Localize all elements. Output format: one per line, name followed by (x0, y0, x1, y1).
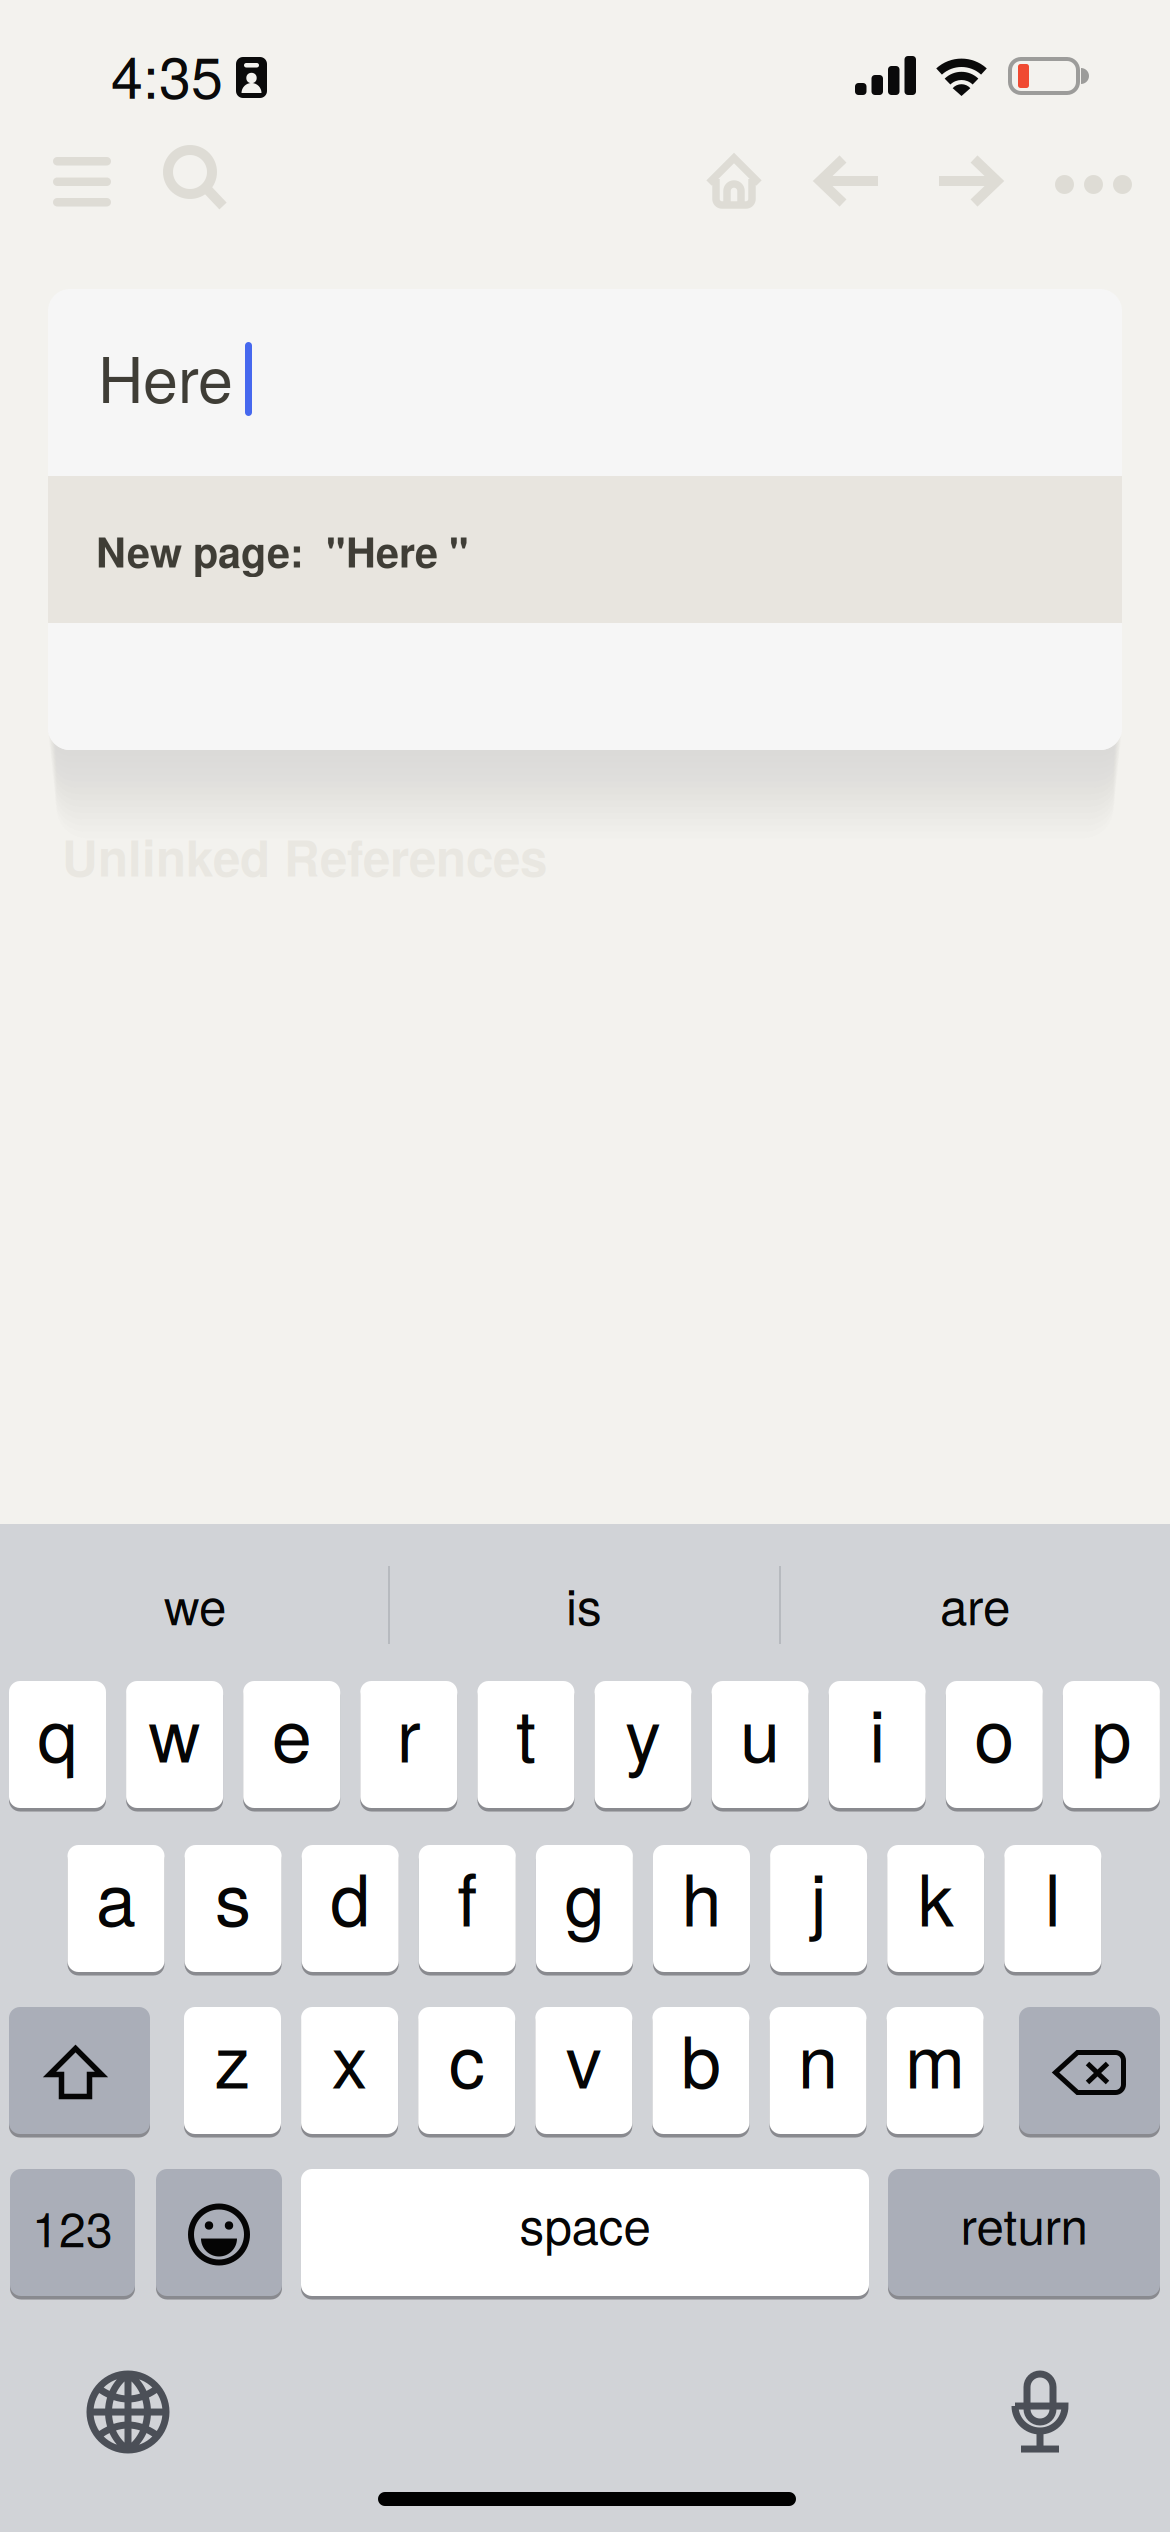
button[interactable]: q (9, 1681, 106, 1812)
button[interactable]: g (536, 1845, 633, 1976)
button[interactable]: o (946, 1681, 1043, 1812)
button[interactable]: space (301, 2169, 869, 2300)
staticText: e (272, 1680, 312, 1783)
staticText: we (164, 1569, 226, 1639)
button[interactable]: h (653, 1845, 750, 1976)
button[interactable]: u (712, 1681, 809, 1812)
button[interactable]: e (243, 1681, 340, 1812)
staticText: Here (98, 331, 233, 421)
staticText: s (215, 1844, 251, 1947)
button[interactable]: t (477, 1681, 574, 1812)
button[interactable]: d (302, 1845, 399, 1976)
staticText: return (960, 2188, 1087, 2259)
staticText: t (516, 1680, 536, 1783)
staticText: h (681, 1844, 721, 1947)
button[interactable]: Search (143, 125, 253, 235)
button[interactable]: New page: "Here " (48, 476, 1122, 623)
staticText: u (740, 1680, 780, 1783)
button[interactable]: p (1063, 1681, 1160, 1812)
button[interactable]: Dictate (985, 2344, 1095, 2480)
staticText: space (519, 2188, 650, 2259)
staticText: x (332, 2006, 368, 2109)
button[interactable]: l (1004, 1845, 1101, 1976)
staticText: d (330, 1844, 370, 1947)
button[interactable]: are (781, 1554, 1169, 1654)
staticText: i (869, 1680, 885, 1783)
button[interactable]: Menu (27, 131, 137, 233)
staticText: y (625, 1680, 661, 1783)
button[interactable]: z (184, 2007, 281, 2138)
button[interactable]: Delete (1019, 2007, 1160, 2138)
staticText: m (905, 2006, 965, 2109)
button[interactable]: k (887, 1845, 984, 1976)
staticText: z (214, 2006, 250, 2109)
button[interactable]: r (360, 1681, 457, 1812)
staticText: b (681, 2006, 721, 2109)
button[interactable]: Home (679, 126, 789, 236)
staticText: k (918, 1844, 954, 1947)
staticText: q (37, 1680, 77, 1783)
button[interactable]: x (301, 2007, 398, 2138)
button[interactable]: is (389, 1554, 779, 1654)
staticText: j (811, 1844, 827, 1947)
staticText: 4:35 (111, 33, 223, 115)
staticText: 123 (32, 2192, 113, 2261)
button[interactable]: n (769, 2007, 866, 2138)
button[interactable]: return (888, 2169, 1160, 2300)
button[interactable]: 123 (10, 2169, 135, 2300)
staticText: n (798, 2006, 838, 2109)
button[interactable]: v (535, 2007, 632, 2138)
staticText: v (566, 2006, 602, 2109)
staticText: Unlinked References (62, 821, 547, 892)
button[interactable]: i (829, 1681, 926, 1812)
button[interactable]: Emoji (156, 2169, 282, 2300)
staticText: r (397, 1680, 421, 1783)
staticText: New page: "Here " (96, 521, 469, 580)
staticText: a (96, 1844, 136, 1947)
button[interactable]: y (594, 1681, 691, 1812)
button[interactable]: c (418, 2007, 515, 2138)
staticText: g (564, 1844, 604, 1947)
button[interactable]: Forward (911, 130, 1025, 232)
button[interactable]: Back (792, 130, 906, 232)
button[interactable]: we (2, 1554, 388, 1654)
button[interactable]: Switch keyboard (60, 2344, 196, 2480)
button[interactable]: j (770, 1845, 867, 1976)
staticText: w (149, 1680, 201, 1783)
button[interactable]: Shift (9, 2007, 150, 2138)
button[interactable]: f (419, 1845, 516, 1976)
button[interactable]: s (185, 1845, 282, 1976)
button[interactable]: a (67, 1845, 164, 1976)
staticText: o (974, 1680, 1014, 1783)
button[interactable]: w (126, 1681, 223, 1812)
staticText: c (449, 2006, 485, 2109)
staticText: f (457, 1844, 477, 1947)
staticText: p (1091, 1680, 1131, 1783)
button[interactable]: b (652, 2007, 749, 2138)
staticText: are (940, 1569, 1010, 1639)
button[interactable]: More options (1025, 145, 1152, 224)
staticText: l (1045, 1844, 1061, 1947)
staticText: is (566, 1569, 602, 1639)
button[interactable]: m (887, 2007, 984, 2138)
